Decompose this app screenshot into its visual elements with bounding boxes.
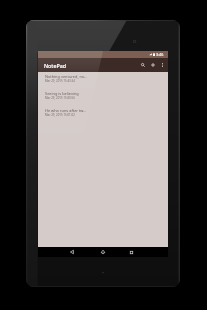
staticText: Mar 29, 2015 15:00:56	[45, 96, 75, 100]
staticText: NotePad	[44, 62, 66, 69]
staticText: Mar 29, 2015 15:01:02	[45, 113, 75, 117]
button[interactable]: More options	[158, 58, 167, 72]
button[interactable]: Search	[138, 58, 148, 72]
staticText: Nothing ventured, no...	[45, 74, 88, 79]
button[interactable]: Recent apps	[125, 247, 137, 257]
staticText: Seeing is believing	[45, 91, 79, 96]
button[interactable]: Nothing ventured, no...	[38, 72, 168, 89]
staticText: Mar 29, 2015 15:43:34	[45, 79, 75, 83]
button[interactable]: Back	[66, 247, 78, 257]
staticText: 3:46	[156, 52, 164, 57]
button[interactable]: Home	[97, 247, 109, 257]
button[interactable]: Add note	[148, 58, 158, 72]
staticText: He who runs after tw...	[45, 108, 87, 113]
button[interactable]: He who runs after tw...	[38, 106, 168, 123]
button[interactable]: Seeing is believing	[38, 89, 168, 106]
